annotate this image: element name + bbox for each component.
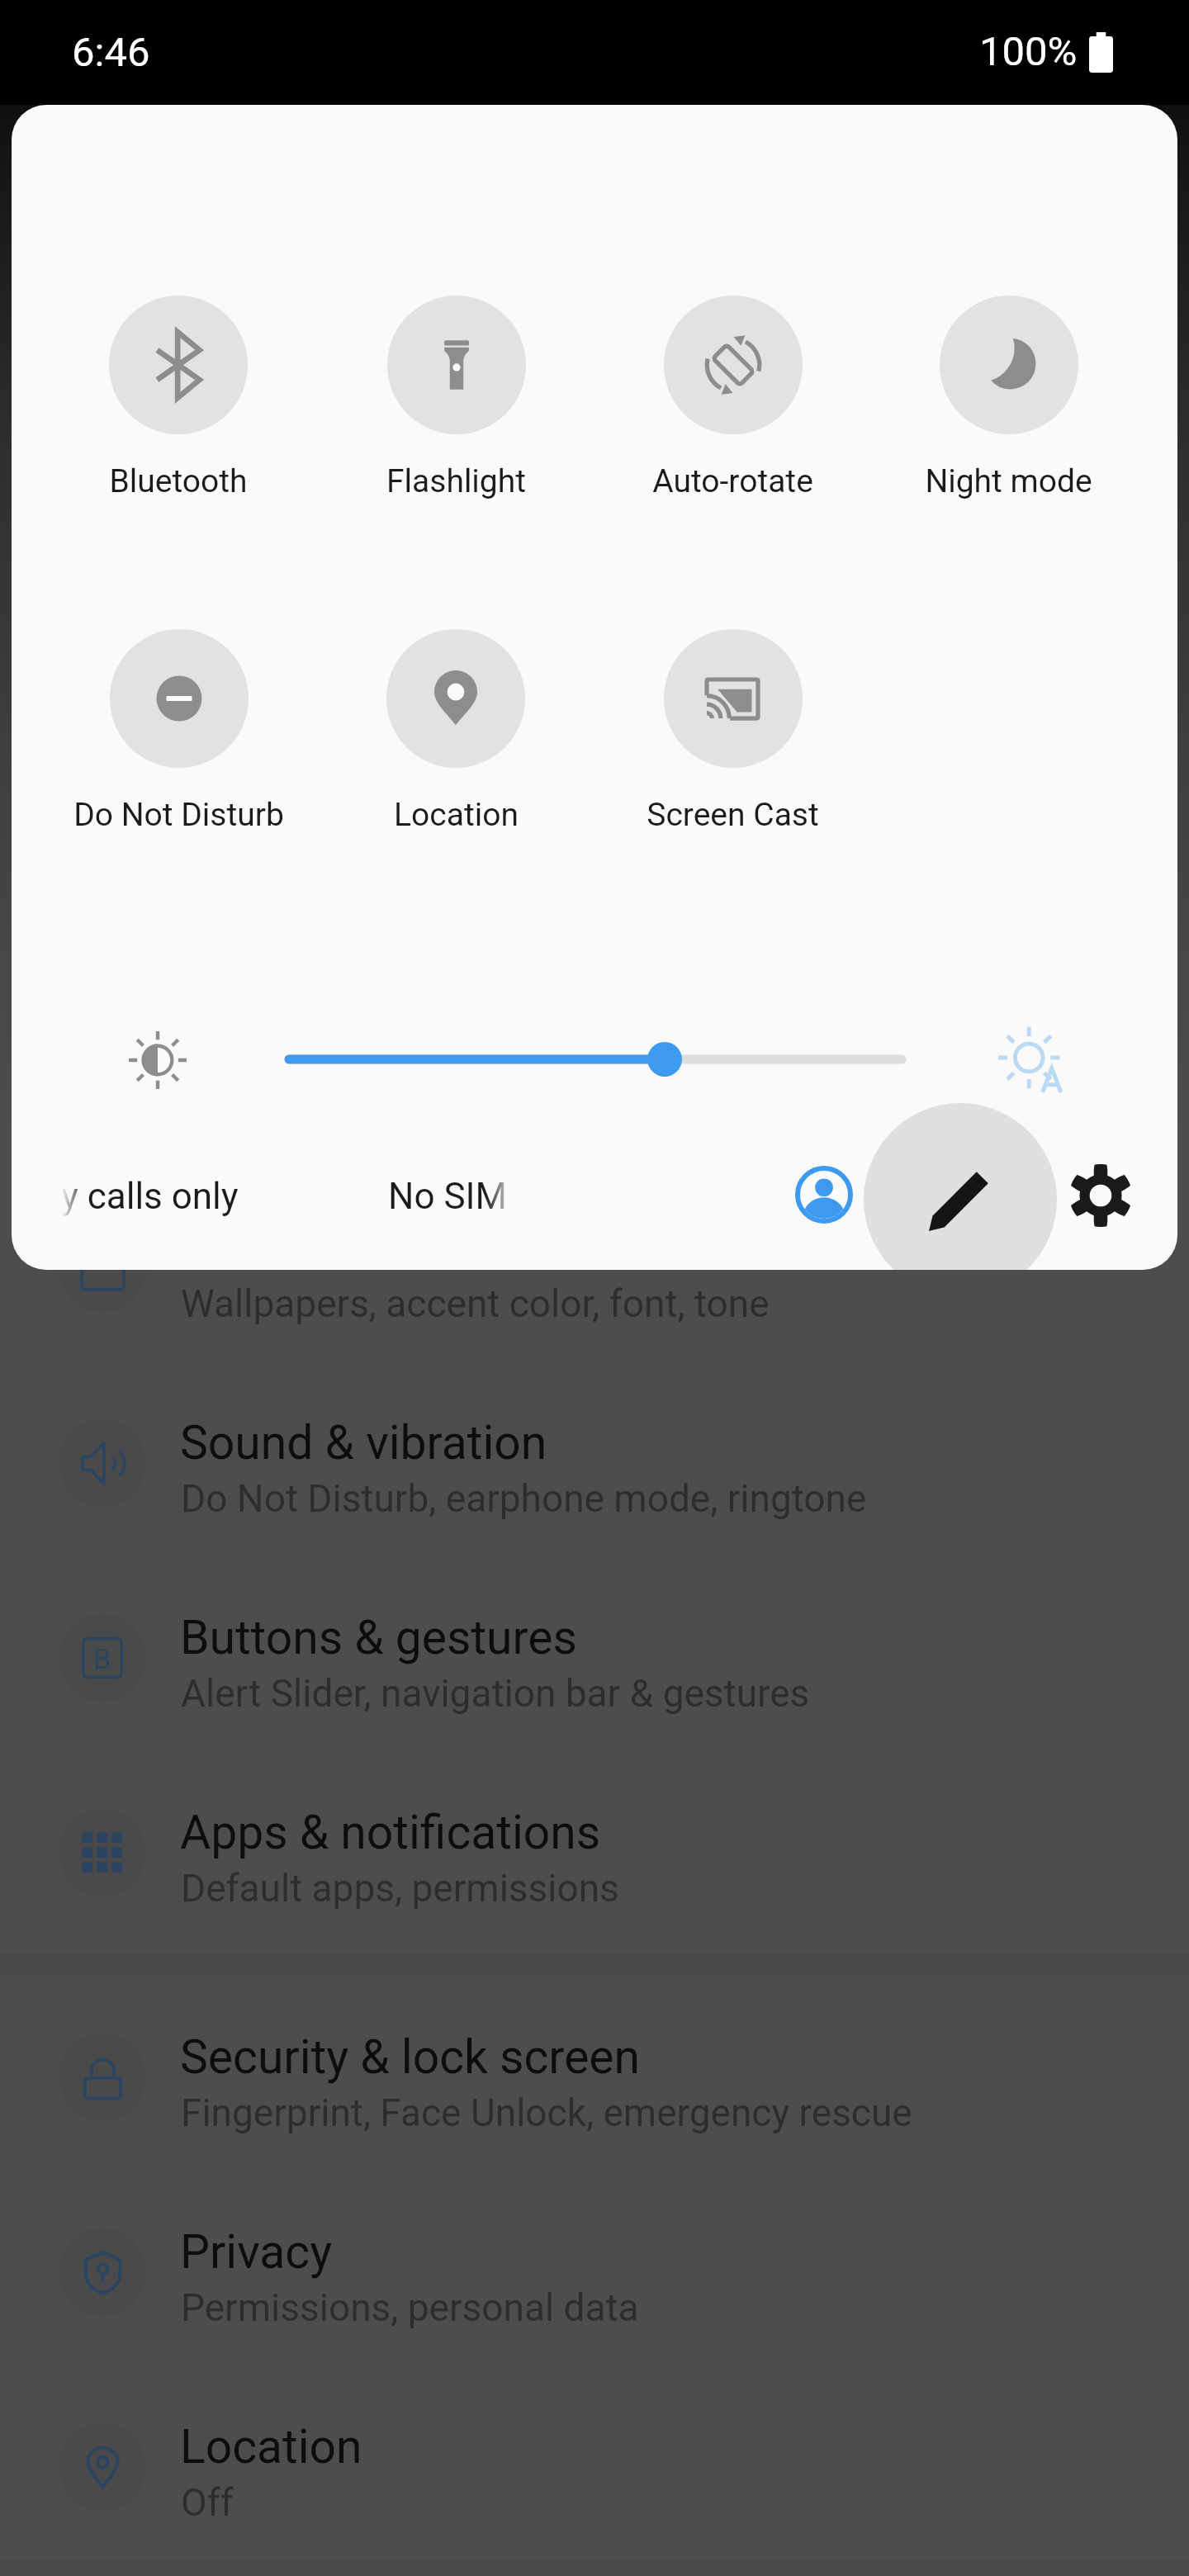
button[interactable]: Personalizations xyxy=(0,1194,1189,1388)
button[interactable]: Settings xyxy=(1043,1138,1158,1253)
staticText: Personalizations xyxy=(180,1220,529,1276)
staticText: Location xyxy=(394,796,519,834)
staticText: 100% xyxy=(979,28,1078,75)
staticText: No SIM xyxy=(388,1175,507,1218)
button[interactable]: B xyxy=(0,1584,1189,1778)
button[interactable]: Location xyxy=(0,2393,1189,2576)
button[interactable]: Edit tiles xyxy=(864,1103,1057,1270)
button[interactable]: Night mode xyxy=(869,286,1147,525)
button[interactable]: Security & lock screen xyxy=(0,2003,1189,2197)
staticText: Do Not Disturb, earphone mode, ringtone xyxy=(181,1476,867,1521)
staticText: Buttons & gestures xyxy=(180,1610,577,1665)
staticText: B xyxy=(93,1642,111,1675)
button[interactable]: Auto brightness xyxy=(973,1002,1089,1117)
button[interactable]: Privacy xyxy=(0,2198,1189,2392)
button[interactable]: Auto-rotate xyxy=(594,286,871,525)
button[interactable]: No SIM xyxy=(342,1145,573,1248)
staticText: 6:46 xyxy=(72,29,150,76)
staticText: Night mode xyxy=(925,462,1092,500)
staticText: Off xyxy=(181,2480,234,2525)
button[interactable]: Flashlight xyxy=(317,286,594,525)
button[interactable]: y calls only xyxy=(28,1145,342,1248)
button[interactable]: Location xyxy=(317,619,594,859)
staticText: Screen Cast xyxy=(647,796,819,834)
staticText: Permissions, personal data xyxy=(181,2285,639,2330)
button[interactable]: Screen Cast xyxy=(594,619,871,859)
button[interactable]: User xyxy=(766,1137,882,1252)
staticText: Privacy xyxy=(180,2224,333,2280)
staticText: Flashlight xyxy=(386,462,526,500)
button[interactable]: Brightness xyxy=(100,1002,216,1118)
staticText: Fingerprint, Face Unlock, emergency resc… xyxy=(181,2091,912,2135)
staticText: Default apps, permissions xyxy=(181,1866,619,1911)
staticText: Do Not Disturb xyxy=(73,796,284,834)
button[interactable]: Brightness level xyxy=(272,1026,918,1092)
staticText: Wallpapers, accent color, font, tone xyxy=(181,1281,770,1326)
button[interactable]: Bluetooth xyxy=(40,286,317,525)
staticText: Auto-rotate xyxy=(652,462,813,500)
button[interactable]: Sound & vibration xyxy=(0,1389,1189,1583)
staticText: Bluetooth xyxy=(109,462,248,500)
staticText: Location xyxy=(180,2419,362,2474)
staticText: Security & lock screen xyxy=(180,2029,641,2085)
staticText: Apps & notifications xyxy=(180,1805,601,1860)
staticText: Sound & vibration xyxy=(180,1415,547,1470)
staticText: Alert Slider, navigation bar & gestures xyxy=(181,1671,810,1716)
button[interactable]: Apps & notifications xyxy=(0,1778,1189,1972)
staticText: y calls only xyxy=(61,1175,239,1218)
button[interactable]: Do Not Disturb xyxy=(40,619,317,859)
